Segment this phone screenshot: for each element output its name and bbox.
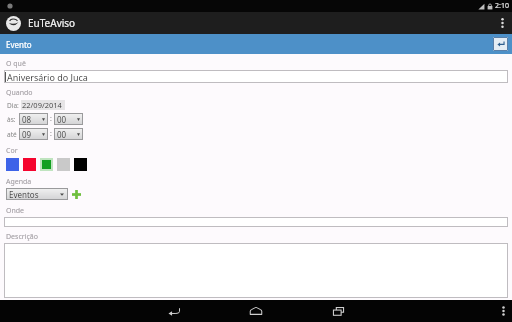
button[interactable]: Onde field — [4, 217, 508, 227]
staticText: Quando — [6, 88, 33, 98]
button[interactable]: 08 — [19, 113, 48, 125]
button[interactable]: Descrição field — [4, 243, 508, 298]
button[interactable]: 00 — [54, 128, 83, 140]
staticText: 09 — [22, 129, 32, 140]
staticText: Onde — [6, 206, 25, 216]
staticText: até — [7, 130, 17, 139]
button[interactable]: Aniversário do Juca — [4, 70, 508, 83]
staticText: 00 — [57, 129, 67, 140]
button[interactable]: Back — [157, 300, 191, 322]
staticText: às: — [7, 115, 16, 124]
staticText: 2:10 — [495, 1, 509, 11]
button[interactable]: Menu — [494, 300, 512, 322]
button[interactable]: More options — [492, 12, 512, 34]
button[interactable]: Home — [239, 300, 273, 322]
staticText: 22/09/2014 — [22, 100, 62, 110]
staticText: 08 — [22, 114, 32, 125]
button[interactable]: Add calendar — [71, 189, 82, 200]
staticText: EuTeAviso — [28, 16, 76, 30]
staticText: : — [50, 114, 52, 124]
staticText: Evento — [6, 39, 32, 50]
staticText: Descrição — [6, 232, 38, 242]
button[interactable]: 22/09/2014 — [21, 100, 65, 110]
staticText: Eventos — [9, 189, 39, 200]
staticText: Cor — [6, 146, 18, 156]
button[interactable]: Recent apps — [321, 300, 355, 322]
staticText: : — [50, 129, 52, 139]
staticText: Agenda — [6, 177, 32, 187]
button[interactable]: Eventos — [6, 188, 68, 200]
button[interactable]: 09 — [19, 128, 48, 140]
staticText: Aniversário do Juca — [7, 71, 88, 83]
button[interactable]: 00 — [54, 113, 83, 125]
staticText: O quê — [6, 59, 26, 69]
button[interactable]: Undo — [493, 37, 508, 51]
staticText: 00 — [57, 114, 67, 125]
staticText: Dia: — [7, 101, 19, 110]
